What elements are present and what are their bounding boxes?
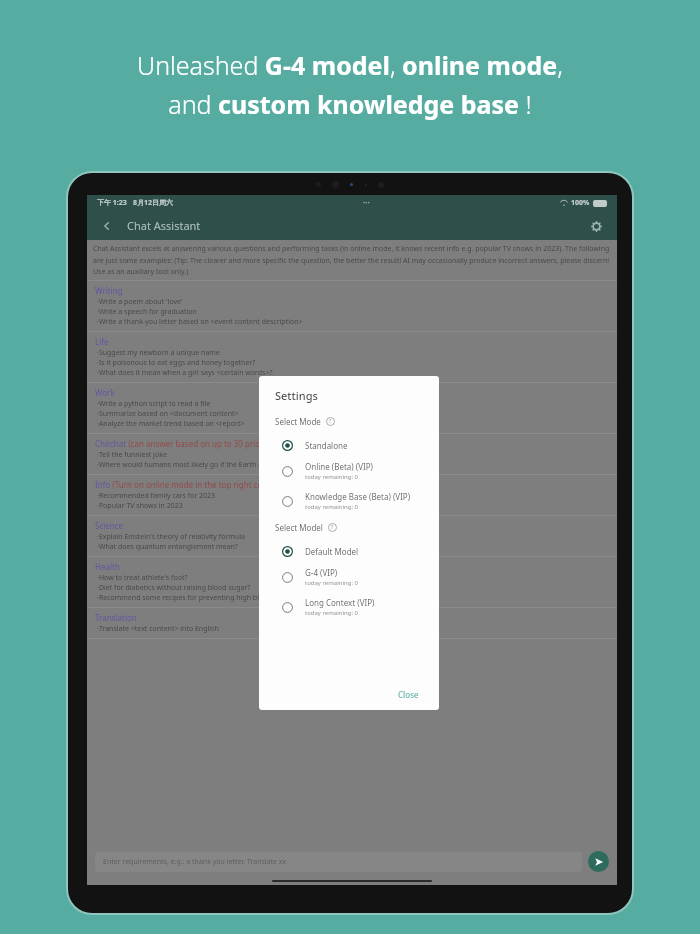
staticText: ·Write a thank-you letter based on <even… <box>97 317 611 327</box>
button[interactable]: Back <box>97 216 117 236</box>
staticText: ·What does quantum entanglement mean? <box>97 542 611 552</box>
staticText: Info (Turn on online mode in the top rig… <box>95 479 611 490</box>
staticText: ·Summarize based on <document content> <box>97 409 611 419</box>
staticText: Long Context (VIP) <box>305 597 375 608</box>
staticText: Online (Beta) (VIP) <box>305 461 373 472</box>
staticText: ·Diet for diabetics without raising bloo… <box>97 583 611 593</box>
button[interactable]: Writing <box>87 281 617 331</box>
button[interactable]: Knowledge Base (Beta) (VIP) <box>275 486 423 516</box>
button[interactable]: Enter requirements, e.g.: a thank you le… <box>95 852 582 872</box>
button[interactable]: Send <box>588 851 609 872</box>
staticText: ••• <box>363 199 370 207</box>
button[interactable]: Standalone <box>275 435 423 456</box>
staticText: Settings <box>275 388 318 403</box>
button[interactable]: Info (Turn on online mode in the top rig… <box>87 475 617 515</box>
staticText: ·Recommended family cars for 2023 <box>97 491 611 501</box>
staticText: ·Suggest my newborn a unique name <box>97 348 611 358</box>
staticText: 下午 1:23 <box>97 198 127 208</box>
staticText: Health <box>95 561 611 572</box>
staticText: Translation <box>95 612 611 623</box>
staticText: ·What does it mean when a girl says <cer… <box>97 368 611 378</box>
staticText: 8月12日周六 <box>133 198 174 208</box>
staticText: ·Analyze the market trend based on <repo… <box>97 419 611 429</box>
staticText: today remaining: 0 <box>305 579 358 587</box>
button[interactable]: Health <box>87 557 617 607</box>
staticText: ·How to treat athlete's foot? <box>97 573 611 583</box>
staticText: Science <box>95 520 611 531</box>
button[interactable]: Help about Select Model <box>328 523 337 532</box>
staticText: ? <box>331 524 334 531</box>
staticText: ·Translate <text content> into English <box>97 624 611 634</box>
staticText: Chitchat (can answer based on up to 30 p… <box>95 438 611 449</box>
staticText: G-4 (VIP) <box>305 567 338 578</box>
button[interactable]: Online (Beta) (VIP) <box>275 456 423 486</box>
staticText: Select Model <box>275 522 323 533</box>
button[interactable]: G-4 (VIP) <box>275 562 423 592</box>
staticText: today remaining: 0 <box>305 503 358 511</box>
staticText: ·Write a speech for graduation <box>97 307 611 317</box>
staticText: Standalone <box>305 440 348 451</box>
staticText: today remaining: 0 <box>305 473 358 481</box>
staticText: Chat Assistant <box>127 218 201 233</box>
button[interactable]: Chitchat (can answer based on up to 30 p… <box>87 434 617 474</box>
button[interactable]: Close <box>394 685 423 704</box>
button[interactable]: Work <box>87 383 617 433</box>
staticText: ·Popular TV shows in 2023 <box>97 501 611 511</box>
staticText: ·Write a python script to read a file <box>97 399 611 409</box>
button[interactable]: Settings <box>585 215 607 237</box>
staticText: Writing <box>95 285 611 296</box>
staticText: ·Is it poisonous to eat eggs and honey t… <box>97 358 611 368</box>
button[interactable]: Long Context (VIP) <box>275 592 423 622</box>
staticText: Default Model <box>305 546 359 557</box>
staticText: ·Write a poem about 'love' <box>97 297 611 307</box>
staticText: ·Tell the funniest joke <box>97 450 611 460</box>
staticText: Enter requirements, e.g.: a thank you le… <box>103 857 287 867</box>
staticText: and custom knowledge base ! <box>168 87 532 121</box>
staticText: 100% <box>571 198 590 208</box>
staticText: Knowledge Base (Beta) (VIP) <box>305 491 411 502</box>
button[interactable]: Default Model <box>275 541 423 562</box>
staticText: ·Explain Einstein's theory of relativity… <box>97 532 611 542</box>
staticText: today remaining: 0 <box>305 609 358 617</box>
button[interactable]: Help about Select Mode <box>326 417 335 426</box>
staticText: ·Where would humans most likely go if th… <box>97 460 611 470</box>
staticText: Select Mode <box>275 416 321 427</box>
button[interactable]: Life <box>87 332 617 382</box>
staticText: ? <box>329 418 332 425</box>
staticText: Work <box>95 387 611 398</box>
staticText: Unleashed G-4 model, online mode, <box>137 48 563 82</box>
staticText: Chat Assistant excels at answering vario… <box>93 244 611 276</box>
staticText: Close <box>398 689 419 700</box>
staticText: ·Recommend some recipes for preventing h… <box>97 593 611 603</box>
button[interactable]: Science <box>87 516 617 556</box>
button[interactable]: Translation <box>87 608 617 638</box>
